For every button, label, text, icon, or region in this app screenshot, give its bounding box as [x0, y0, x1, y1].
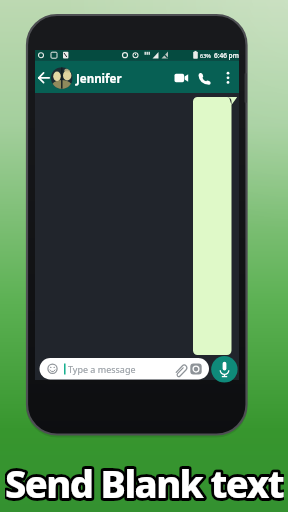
staticText: 63% — [200, 52, 211, 59]
button[interactable] — [62, 357, 168, 380]
button[interactable] — [172, 357, 188, 380]
button[interactable] — [50, 64, 120, 92]
staticText: Send Blank text — [5, 457, 284, 507]
staticText: Type a message — [68, 363, 136, 375]
button[interactable] — [188, 357, 204, 380]
button[interactable] — [194, 64, 214, 92]
staticText: 6:46 pm — [214, 51, 239, 60]
staticText: Send Blank text — [5, 457, 284, 507]
staticText: Jennifer — [76, 71, 122, 87]
button[interactable] — [219, 64, 237, 92]
button[interactable] — [45, 357, 61, 380]
button[interactable] — [34, 62, 54, 92]
button[interactable] — [171, 64, 191, 92]
button[interactable] — [211, 356, 238, 383]
